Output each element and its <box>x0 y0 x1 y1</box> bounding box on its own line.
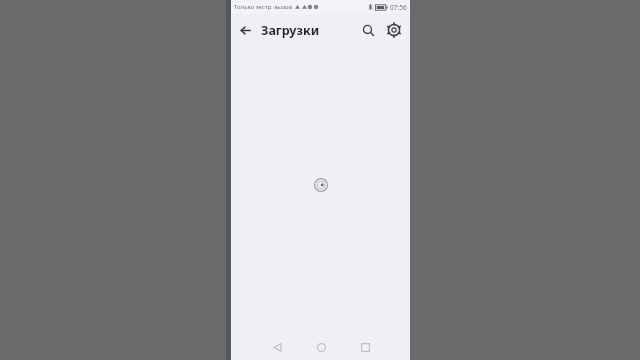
button[interactable]: Recent apps <box>352 335 378 360</box>
button[interactable]: Settings <box>381 17 407 43</box>
staticText: Только экстр. вызов <box>234 3 293 11</box>
staticText: Загрузки <box>261 22 320 39</box>
button[interactable]: Search <box>355 17 381 43</box>
button[interactable]: Home <box>308 335 334 360</box>
button[interactable]: Back <box>264 335 290 360</box>
staticText: 07:56 <box>390 3 407 12</box>
button[interactable]: Back <box>231 16 259 44</box>
